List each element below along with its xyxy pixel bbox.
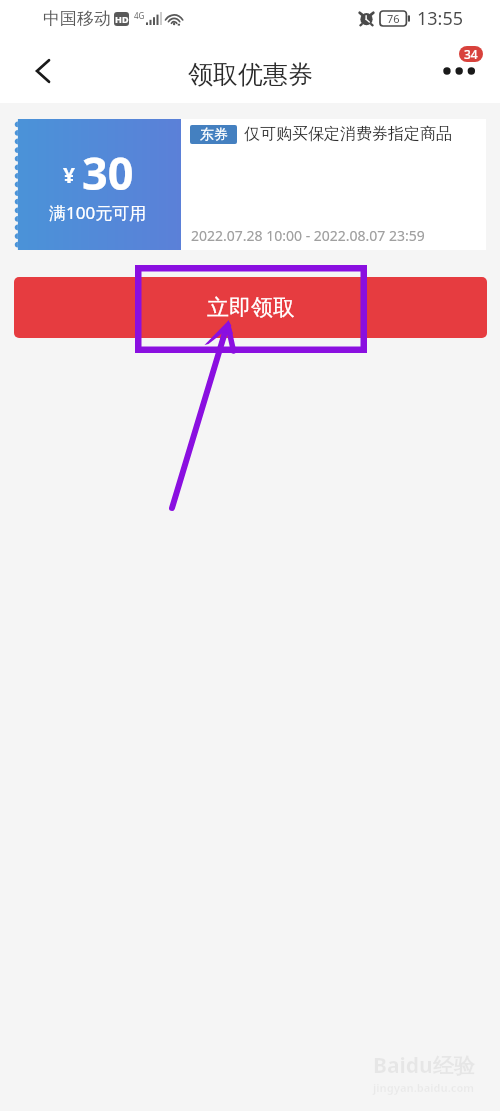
staticText: Baidu经验 (373, 1051, 475, 1080)
staticText: 30 (82, 142, 134, 203)
staticText: ¥ (63, 161, 76, 190)
staticText: 76 (387, 11, 400, 26)
staticText: HD (115, 13, 129, 25)
staticText: 立即领取 (207, 294, 295, 322)
button[interactable]: ¥ (15, 119, 486, 250)
staticText: 东券 (200, 126, 228, 144)
staticText: 13:55 (417, 6, 464, 31)
staticText: 中国移动 (43, 8, 111, 29)
staticText: 4G (134, 10, 145, 21)
staticText: 领取优惠券 (188, 59, 313, 90)
button[interactable]: More options (438, 45, 484, 91)
staticText: 满100元可用 (49, 201, 147, 224)
staticText: 仅可购买保定消费券指定商品 (244, 124, 452, 144)
staticText: 34 (464, 46, 478, 62)
staticText: jingyan.baidu.com (373, 1080, 475, 1095)
button[interactable]: 立即领取 (14, 277, 487, 338)
staticText: 2022.07.28 10:00 - 2022.08.07 23:59 (191, 226, 425, 245)
button[interactable]: Back (24, 52, 62, 90)
